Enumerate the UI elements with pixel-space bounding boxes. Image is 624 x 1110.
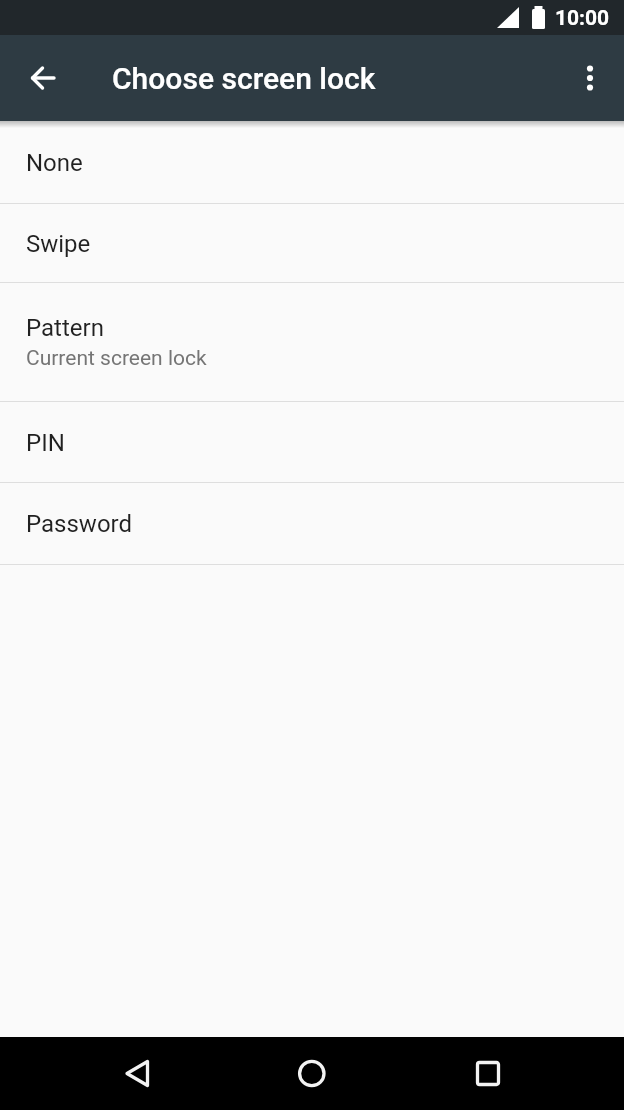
- button[interactable]: None: [0, 121, 624, 204]
- staticText: Current screen lock: [26, 346, 207, 371]
- button[interactable]: Password: [0, 483, 624, 565]
- staticText: Swipe: [26, 230, 91, 258]
- staticText: 10:00: [555, 6, 610, 31]
- staticText: Password: [26, 510, 133, 538]
- staticText: PIN: [26, 429, 65, 457]
- button[interactable]: [416, 1037, 624, 1110]
- button[interactable]: [208, 1037, 416, 1110]
- button[interactable]: Pattern: [0, 283, 624, 402]
- staticText: Choose screen lock: [112, 61, 376, 96]
- button[interactable]: Swipe: [0, 204, 624, 283]
- staticText: None: [26, 149, 83, 177]
- button[interactable]: [570, 58, 610, 98]
- button[interactable]: [0, 1037, 208, 1110]
- button[interactable]: PIN: [0, 402, 624, 483]
- button[interactable]: [22, 57, 64, 99]
- staticText: Pattern: [26, 314, 104, 342]
